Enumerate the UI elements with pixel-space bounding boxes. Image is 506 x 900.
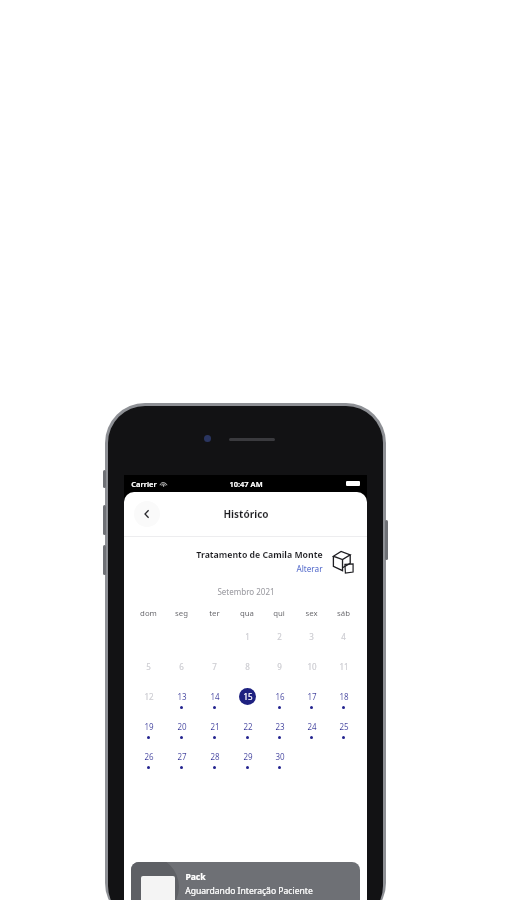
button[interactable]: 2 [271, 628, 288, 645]
staticText: 20 [177, 721, 187, 732]
button[interactable]: 29 [239, 748, 256, 765]
staticText: 16 [275, 691, 285, 702]
staticText: ter [209, 608, 220, 619]
staticText: 27 [177, 751, 187, 762]
staticText: Tratamento de Camila Monte [196, 549, 323, 561]
button[interactable]: 28 [206, 748, 223, 765]
button[interactable]: 23 [271, 718, 288, 735]
button[interactable]: 18 [335, 688, 352, 705]
staticText: 18 [339, 691, 349, 702]
staticText: 19 [144, 721, 154, 732]
staticText: 2 [277, 631, 282, 642]
staticText: 11 [339, 661, 349, 672]
staticText: seg [175, 608, 188, 619]
button[interactable]: 22 [239, 718, 256, 735]
staticText: Setembro 2021 [217, 586, 275, 597]
staticText: 1 [245, 631, 250, 642]
staticText: 29 [243, 751, 253, 762]
staticText: Pack [185, 871, 206, 883]
button[interactable]: Back [134, 501, 160, 527]
button[interactable]: 25 [335, 718, 352, 735]
staticText: 8 [245, 661, 250, 672]
button[interactable]: 21 [206, 718, 223, 735]
staticText: sex [305, 608, 318, 619]
staticText: dom [140, 608, 157, 619]
button[interactable]: 5 [140, 658, 157, 675]
button[interactable]: 14 [206, 688, 223, 705]
button[interactable]: 19 [140, 718, 157, 735]
staticText: 25 [339, 721, 349, 732]
button[interactable]: 9 [271, 658, 288, 675]
button[interactable]: 26 [140, 748, 157, 765]
button[interactable]: 30 [271, 748, 288, 765]
staticText: 6 [179, 661, 184, 672]
button[interactable]: 8 [239, 658, 256, 675]
button[interactable]: Pack [131, 862, 360, 900]
button[interactable]: 12 [140, 688, 157, 705]
button[interactable]: 13 [173, 688, 190, 705]
staticText: qui [273, 608, 285, 619]
button[interactable]: 27 [173, 748, 190, 765]
staticText: 24 [307, 721, 317, 732]
staticText: 26 [144, 751, 154, 762]
staticText: sáb [337, 608, 350, 619]
staticText: Aguardando Interação Paciente [185, 885, 313, 897]
button[interactable]: 3 [303, 628, 320, 645]
button[interactable]: 17 [303, 688, 320, 705]
staticText: 21 [210, 721, 220, 732]
staticText: 13 [177, 691, 187, 702]
button[interactable]: 4 [335, 628, 352, 645]
button[interactable]: 16 [271, 688, 288, 705]
button[interactable]: 10 [303, 658, 320, 675]
staticText: 17 [307, 691, 317, 702]
button[interactable]: 24 [303, 718, 320, 735]
staticText: 10:47 AM [229, 479, 263, 489]
staticText: 9 [277, 661, 282, 672]
staticText: 14 [210, 691, 220, 702]
staticText: qua [240, 608, 254, 619]
staticText: 12 [144, 691, 154, 702]
button[interactable]: 15 [239, 688, 256, 705]
staticText: 30 [275, 751, 285, 762]
staticText: 15 [243, 691, 253, 702]
staticText: Histórico [223, 507, 269, 521]
staticText: Alterar [296, 563, 323, 574]
staticText: 5 [146, 661, 151, 672]
staticText: 4 [341, 631, 346, 642]
button[interactable]: 7 [206, 658, 223, 675]
staticText: 10 [307, 661, 317, 672]
button[interactable]: Tratamento de Camila Monte [138, 549, 355, 574]
button[interactable]: 1 [239, 628, 256, 645]
button[interactable]: 20 [173, 718, 190, 735]
staticText: 23 [275, 721, 285, 732]
staticText: 28 [210, 751, 220, 762]
staticText: 3 [309, 631, 314, 642]
staticText: 22 [243, 721, 253, 732]
staticText: 7 [212, 661, 217, 672]
button[interactable]: 6 [173, 658, 190, 675]
button[interactable]: 11 [335, 658, 352, 675]
staticText: Carrier [131, 479, 157, 489]
